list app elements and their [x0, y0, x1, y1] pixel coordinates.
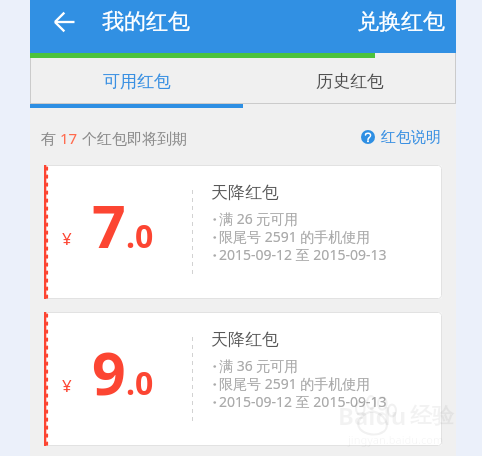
staticText: 2015-09-12 至 2015-09-13: [219, 245, 387, 263]
staticText: 满 26 元可用: [219, 209, 299, 227]
staticText: 有: [41, 128, 60, 148]
staticText: 天降红包: [211, 329, 279, 350]
staticText: ¥: [62, 227, 72, 250]
staticText: 天降红包: [211, 182, 279, 203]
staticText: 历史红包: [316, 71, 384, 92]
staticText: 我的红包: [102, 8, 190, 36]
staticText: 红包说明: [381, 128, 441, 147]
button[interactable]: 兑换红包: [346, 2, 456, 42]
button[interactable]: ¥: [44, 165, 442, 299]
staticText: .0: [126, 214, 154, 258]
staticText: 限尾号 2591 的手机使用: [219, 374, 371, 392]
button[interactable]: ¥: [44, 312, 442, 446]
staticText: 经验: [410, 402, 454, 430]
button[interactable]: 可用红包: [30, 58, 243, 104]
staticText: 2015-09-12 至 2015-09-13: [219, 392, 387, 410]
staticText: jingyan.baidu.com: [348, 432, 444, 447]
staticText: .0: [126, 361, 154, 405]
staticText: ¥: [62, 374, 72, 397]
button[interactable]: Back: [44, 2, 84, 42]
staticText: Baidu: [338, 399, 407, 432]
staticText: 个红包即将到期: [78, 128, 187, 148]
staticText: 17: [60, 128, 78, 148]
staticText: 可用红包: [103, 71, 171, 92]
button[interactable]: 历史红包: [243, 58, 456, 104]
staticText: 限尾号 2591 的手机使用: [219, 227, 371, 245]
staticText: 满 36 元可用: [219, 356, 299, 374]
button[interactable]: 红包说明: [361, 128, 441, 147]
staticText: 9: [92, 332, 126, 412]
staticText: 兑换红包: [357, 8, 445, 36]
staticText: 7: [92, 185, 126, 265]
